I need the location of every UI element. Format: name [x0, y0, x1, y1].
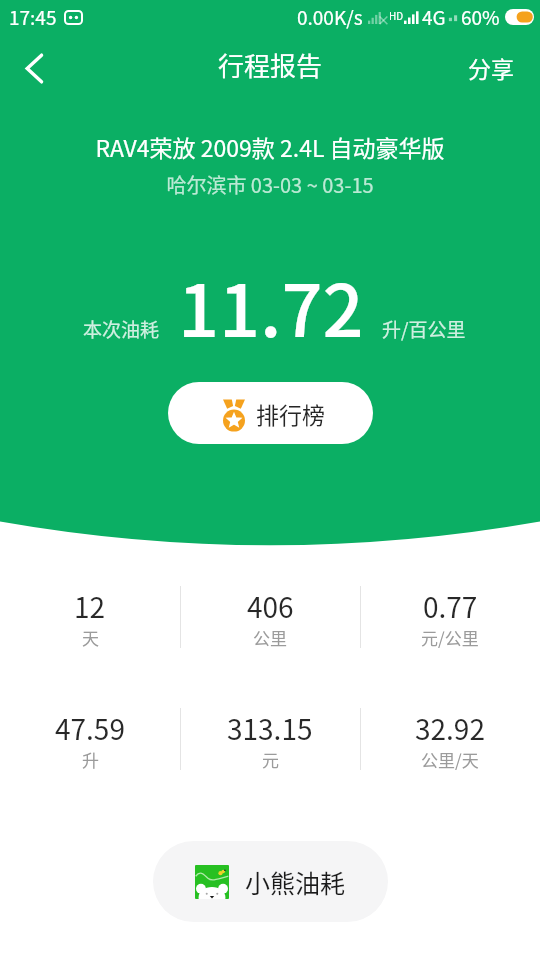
staticText: 天 — [82, 625, 99, 650]
staticText: 本次油耗 — [83, 315, 160, 343]
staticText: 32.92 — [415, 708, 485, 749]
staticText: 小熊油耗 — [245, 864, 346, 900]
button[interactable]: 分享 — [448, 36, 540, 94]
staticText: 升 — [82, 747, 99, 772]
staticText: RAV4荣放 2009款 2.4L 自动豪华版 — [0, 130, 540, 163]
staticText: 公里/天 — [421, 747, 479, 772]
staticText: 0.00K/s — [297, 3, 363, 31]
staticText: 406 — [247, 586, 294, 627]
staticText: 47.59 — [55, 708, 125, 749]
button[interactable]: Back — [0, 36, 68, 94]
staticText: 元/公里 — [421, 625, 479, 650]
staticText: 行程报告 — [218, 46, 323, 84]
button[interactable]: 排行榜 — [168, 382, 373, 444]
staticText: 哈尔滨市 03-03 ~ 03-15 — [0, 170, 540, 199]
staticText: 排行榜 — [256, 397, 325, 430]
staticText: 60% — [461, 3, 500, 31]
staticText: 升/百公里 — [382, 315, 466, 343]
staticText: 分享 — [468, 51, 514, 84]
staticText: 313.15 — [227, 708, 313, 749]
staticText: 0.77 — [423, 586, 478, 627]
staticText: 12 — [74, 586, 106, 627]
button[interactable]: 小熊油耗 — [153, 841, 388, 922]
staticText: 11.72 — [178, 253, 364, 357]
staticText: 公里 — [253, 625, 287, 650]
staticText: 4G — [422, 3, 446, 31]
staticText: 元 — [262, 747, 279, 772]
staticText: HD — [389, 8, 404, 22]
staticText: 17:45 — [9, 3, 57, 31]
